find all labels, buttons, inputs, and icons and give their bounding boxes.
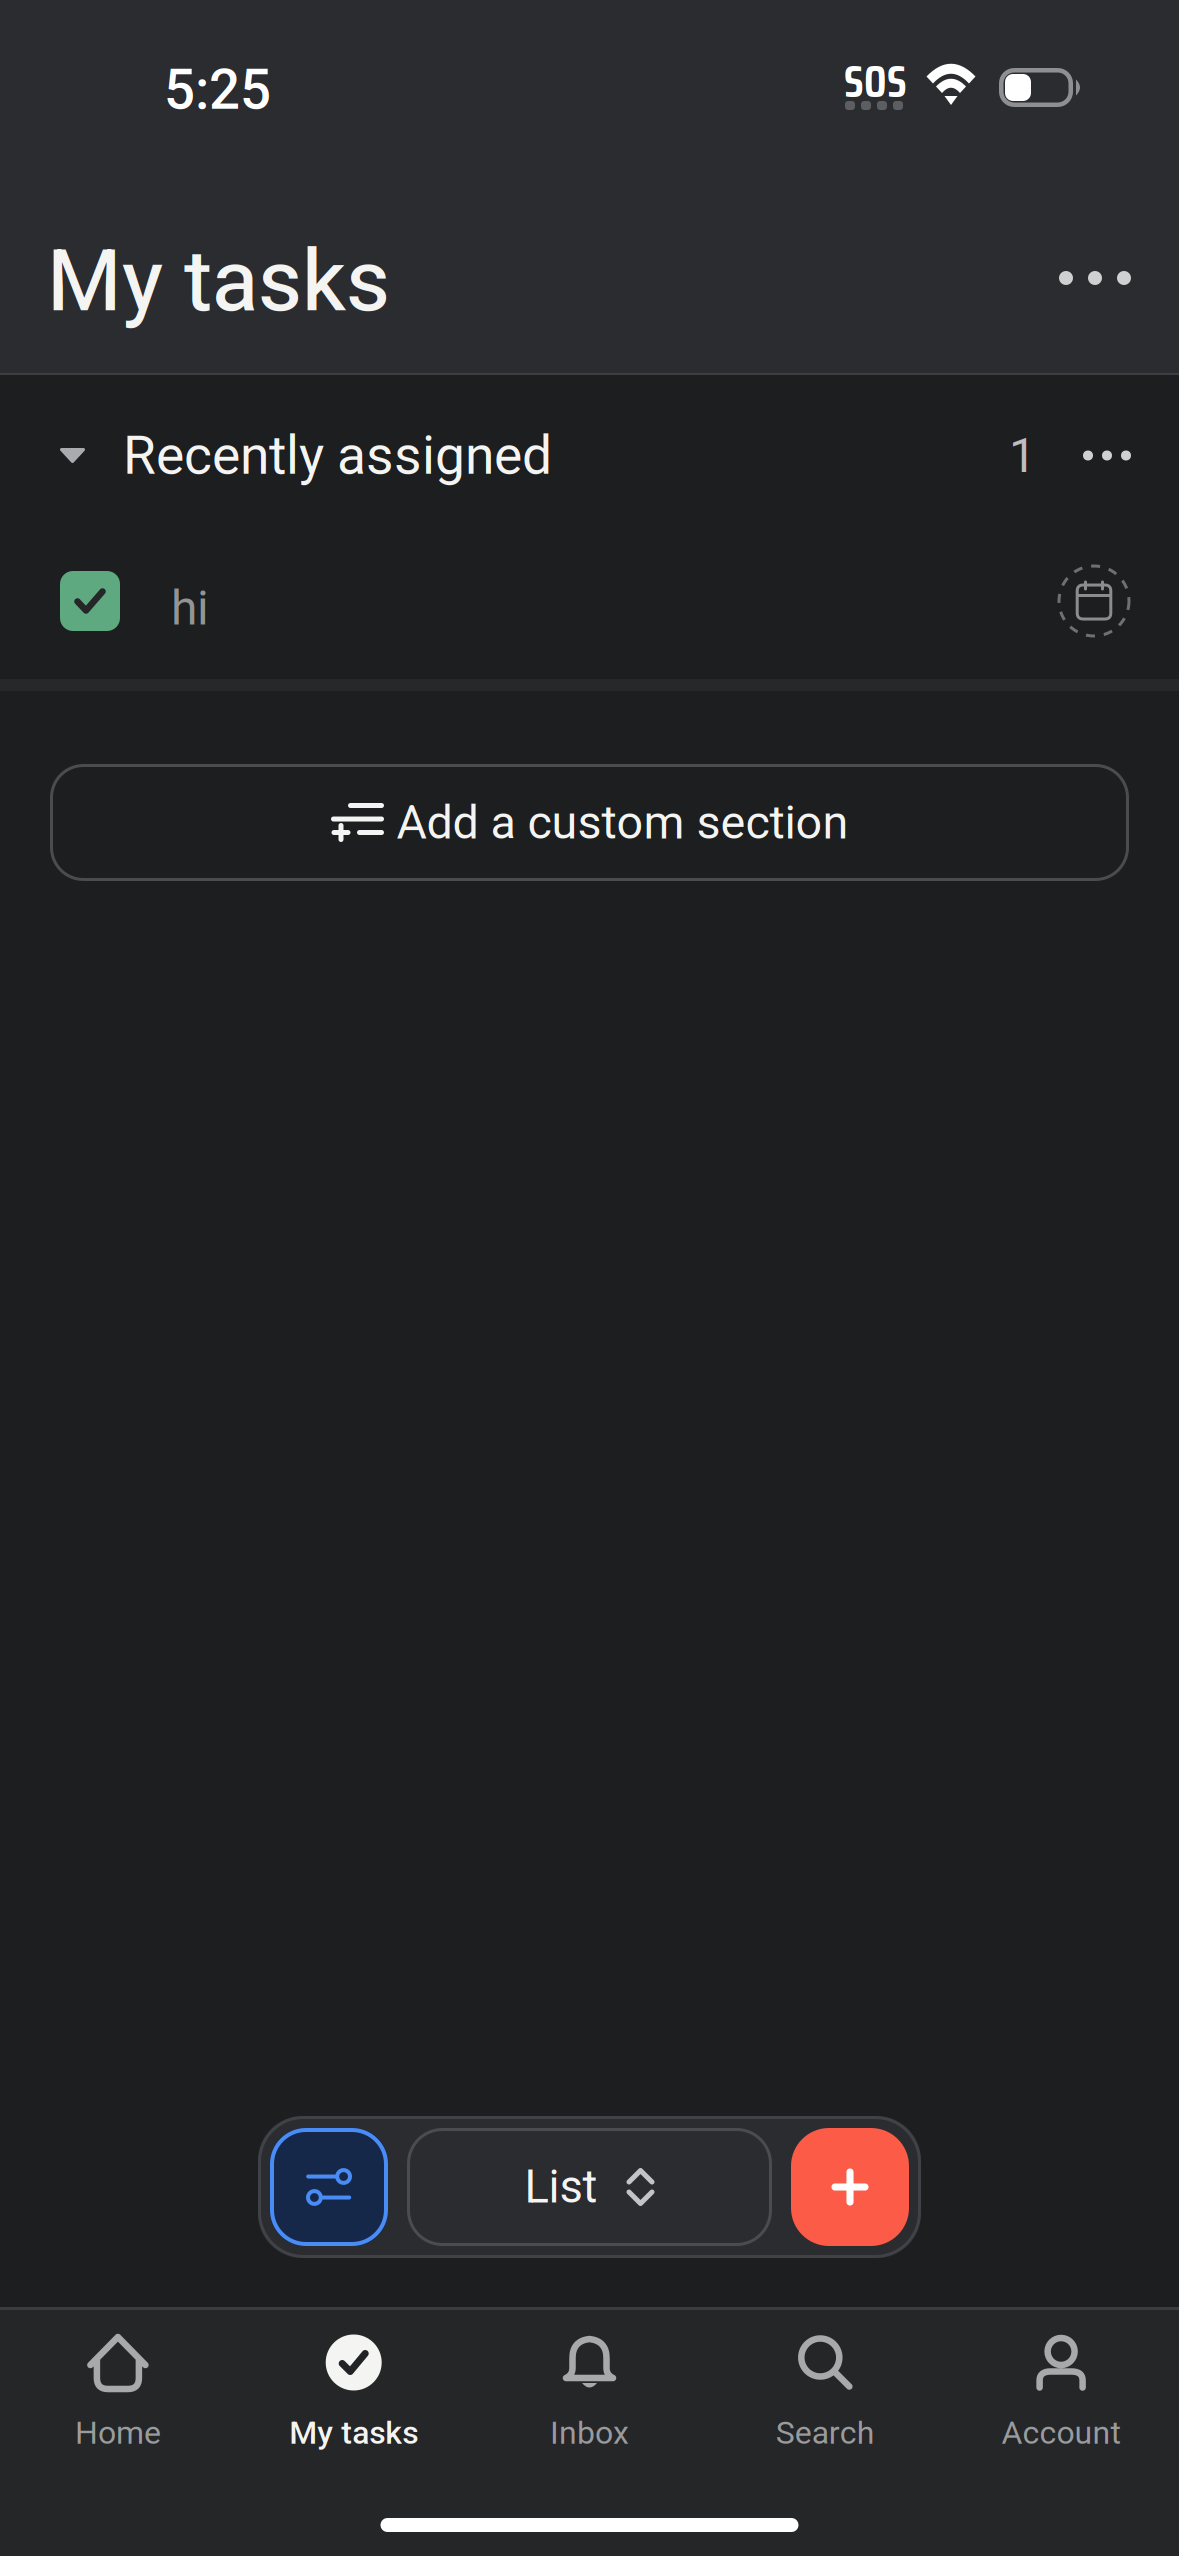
- button[interactable]: Account: [943, 2307, 1179, 2465]
- staticText: 1: [1009, 427, 1036, 484]
- staticText: 5:25: [164, 58, 271, 122]
- staticText: hi: [171, 580, 209, 636]
- staticText: My tasks: [47, 231, 390, 331]
- staticText: Add a custom section: [396, 795, 848, 850]
- staticText: Account: [1002, 2414, 1121, 2451]
- button[interactable]: Add a custom section: [50, 764, 1129, 881]
- staticText: Home: [75, 2414, 161, 2451]
- button[interactable]: Add task: [791, 2128, 909, 2246]
- button[interactable]: Home: [0, 2307, 236, 2465]
- staticText: Inbox: [550, 2414, 629, 2451]
- button[interactable]: Inbox: [472, 2307, 707, 2465]
- button[interactable]: Search: [707, 2307, 943, 2465]
- button[interactable]: Section options: [1036, 420, 1179, 490]
- button[interactable]: List: [407, 2128, 772, 2246]
- staticText: List: [524, 2160, 597, 2213]
- staticText: My tasks: [289, 2414, 418, 2451]
- button[interactable]: Filter: [270, 2128, 388, 2246]
- staticText: Recently assigned: [123, 424, 552, 487]
- staticText: Search: [776, 2414, 875, 2451]
- staticText: SOS: [844, 47, 907, 116]
- button[interactable]: More options: [1033, 244, 1157, 318]
- button[interactable]: Collapse section: [0, 418, 123, 493]
- button[interactable]: My tasks: [236, 2307, 472, 2465]
- button[interactable]: hi: [0, 536, 1179, 679]
